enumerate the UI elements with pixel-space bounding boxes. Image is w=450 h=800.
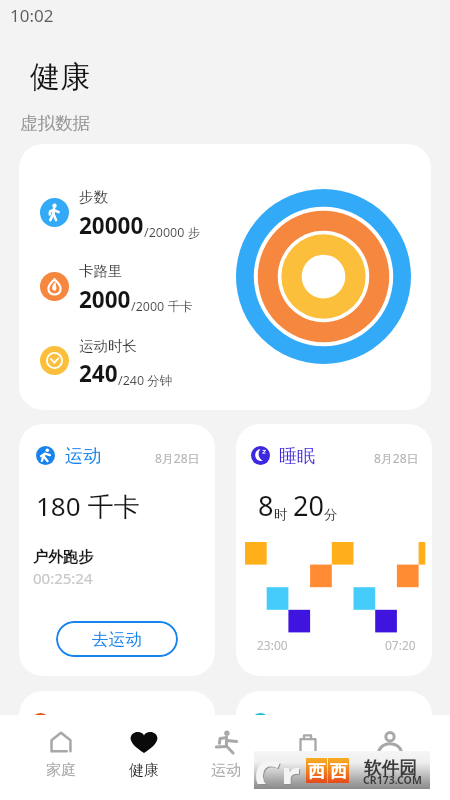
button[interactable]: 睡眠 xyxy=(236,424,432,676)
staticText: 西 xyxy=(308,761,325,782)
staticText: 西 xyxy=(330,761,347,782)
button[interactable]: 运动 xyxy=(19,424,215,676)
button[interactable]: 去运动 xyxy=(56,621,178,657)
staticText: 240 xyxy=(79,358,118,389)
staticText: 180 千卡 xyxy=(36,488,140,524)
button[interactable]: 步数 xyxy=(19,144,431,410)
other: 家庭 xyxy=(50,731,72,753)
staticText: 卡路里 xyxy=(79,262,123,280)
staticText: 户外跑步 xyxy=(33,548,93,567)
other: 健康 xyxy=(133,731,155,753)
staticText: 运动时长 xyxy=(79,337,137,355)
staticText: /2000 千卡 xyxy=(131,298,193,315)
button[interactable]: 商城 xyxy=(267,715,349,800)
staticText: Cr xyxy=(255,747,301,785)
staticText: 运动 xyxy=(211,761,241,780)
button[interactable]: 我的 xyxy=(349,715,431,800)
staticText: 8月28日 xyxy=(374,450,419,466)
button[interactable]: 家庭 xyxy=(19,715,102,800)
staticText: 健康 xyxy=(30,58,90,96)
staticText: /240 分钟 xyxy=(118,372,173,389)
staticText: 07:20 xyxy=(385,637,416,653)
button[interactable]: 健康 xyxy=(102,715,185,800)
other: 我的 xyxy=(379,731,401,753)
staticText: 步数 xyxy=(79,188,108,206)
staticText: 分 xyxy=(324,506,338,523)
staticText: 去运动 xyxy=(92,629,142,650)
staticText: 00:25:24 xyxy=(33,568,93,588)
staticText: 23:00 xyxy=(257,637,288,653)
staticText: CR173.COM xyxy=(363,773,422,787)
staticText: 20000 xyxy=(79,210,144,241)
staticText: 运动 xyxy=(65,445,101,468)
other: 运动 xyxy=(215,731,237,753)
staticText: Cr xyxy=(254,746,300,784)
button[interactable]: 运动 xyxy=(185,715,267,800)
staticText: 20 xyxy=(293,487,324,524)
staticText: 健康 xyxy=(129,761,159,780)
staticText: 睡眠 xyxy=(279,445,315,468)
staticText: /20000 步 xyxy=(144,224,201,241)
staticText: 10:02 xyxy=(10,4,54,27)
staticText: 家庭 xyxy=(46,761,76,780)
staticText: 虚拟数据 xyxy=(20,112,90,134)
staticText: 2000 xyxy=(79,284,131,315)
staticText: 8月28日 xyxy=(155,450,200,466)
staticText: 8 xyxy=(258,487,274,524)
other: 商城 xyxy=(297,731,319,753)
staticText: 软件园 xyxy=(364,757,417,779)
staticText: 时 xyxy=(274,506,288,523)
